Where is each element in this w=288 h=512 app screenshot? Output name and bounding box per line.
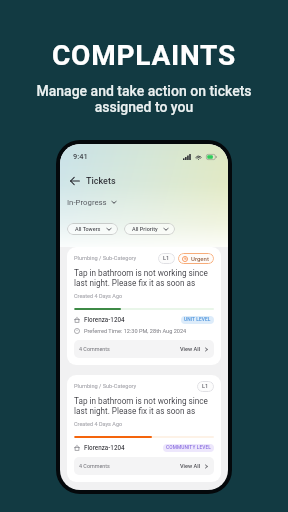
button[interactable]: Level L1 <box>158 253 175 264</box>
staticText: 4 Comments <box>79 346 110 352</box>
button[interactable]: UNIT LEVEL <box>181 316 214 324</box>
staticText: COMMUNITY LEVEL <box>166 445 211 451</box>
button[interactable]: 4 Comments <box>74 457 214 475</box>
button[interactable]: In-Progress <box>67 196 117 208</box>
staticText: Plumbing / Sub-Category <box>74 255 137 262</box>
staticText: L1 <box>202 383 209 390</box>
staticText: Tickets <box>86 176 116 187</box>
button[interactable]: 4 Comments <box>74 340 214 358</box>
staticText: Manage and take action on tickets assign… <box>36 83 252 115</box>
button[interactable]: Plumbing / Sub-Category <box>67 247 221 365</box>
staticText: Plumbing / Sub-Category <box>74 383 137 390</box>
staticText: Florenza-1204 <box>84 316 125 323</box>
button[interactable]: Urgent <box>178 253 214 264</box>
staticText: View All <box>180 346 201 353</box>
staticText: Urgent <box>191 255 209 262</box>
staticText: Tap in bathroom is not working since las… <box>74 396 214 416</box>
staticText: L1 <box>163 255 170 262</box>
button[interactable]: COMMUNITY LEVEL <box>163 444 214 452</box>
button[interactable]: Back <box>68 173 118 189</box>
button[interactable]: All Priority <box>124 223 175 235</box>
staticText: All Towers <box>75 226 101 232</box>
button[interactable]: Level L1 <box>197 381 214 392</box>
staticText: Preferred Time: 12:30 PM, 28th Aug 2024 <box>84 328 187 335</box>
button[interactable]: Plumbing / Sub-Category <box>67 375 221 482</box>
staticText: Created 4 Days Ago <box>74 421 123 427</box>
staticText: 9:41 <box>73 152 88 161</box>
staticText: UNIT LEVEL <box>184 317 211 323</box>
button[interactable]: All Towers <box>67 223 118 235</box>
staticText: In-Progress <box>67 198 107 207</box>
staticText: View All <box>180 463 201 470</box>
staticText: 4 Comments <box>79 463 110 469</box>
staticText: Created 4 Days Ago <box>74 293 123 299</box>
staticText: COMPLAINTS <box>52 39 236 72</box>
staticText: Tap in bathroom is not working since las… <box>74 268 214 288</box>
staticText: Florenza-1204 <box>84 444 125 451</box>
staticText: All Priority <box>132 226 158 232</box>
